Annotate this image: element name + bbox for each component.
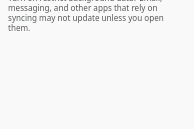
staticText: Turn on restrict background data? Email,…: [8, 0, 164, 34]
